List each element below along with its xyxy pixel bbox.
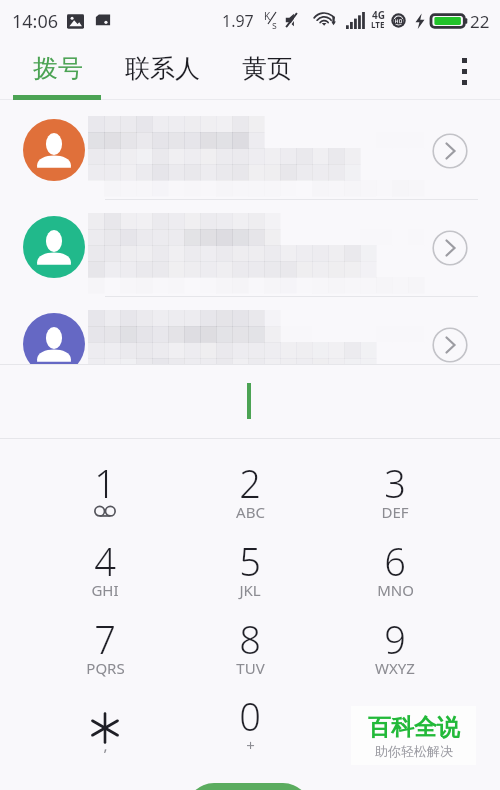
button[interactable]: 1 bbox=[45, 457, 165, 535]
button[interactable]: Details bbox=[432, 133, 468, 169]
button[interactable]: Details bbox=[0, 118, 500, 210]
staticText: 5 bbox=[239, 535, 261, 581]
button[interactable]: 2 bbox=[190, 457, 310, 535]
button[interactable]: Details bbox=[432, 230, 468, 266]
staticText: 0 bbox=[239, 690, 261, 736]
staticText: 助你轻松解决 bbox=[375, 743, 453, 759]
staticText: 4 bbox=[94, 535, 116, 581]
staticText: s bbox=[272, 18, 277, 32]
staticText: MNO bbox=[377, 580, 414, 600]
staticText: K bbox=[264, 9, 271, 23]
staticText: 7 bbox=[94, 613, 116, 659]
staticText: 1.97 bbox=[222, 10, 254, 32]
button[interactable]: 9 bbox=[335, 613, 455, 691]
staticText: 8 bbox=[239, 613, 261, 659]
staticText: JKL bbox=[239, 580, 261, 600]
button[interactable]: 3 bbox=[335, 457, 455, 535]
staticText: 6 bbox=[384, 535, 406, 581]
staticText: PQRS bbox=[86, 658, 125, 678]
button[interactable]: 黄页 bbox=[217, 40, 317, 96]
staticText: 2 bbox=[239, 457, 261, 503]
staticText: GHI bbox=[91, 580, 119, 600]
staticText: 联系人 bbox=[125, 53, 200, 84]
staticText: DEF bbox=[381, 502, 409, 522]
staticText: , bbox=[103, 735, 108, 755]
button[interactable]: 联系人 bbox=[112, 40, 212, 96]
button[interactable]: # bbox=[335, 690, 455, 768]
staticText: 拨号 bbox=[33, 53, 83, 84]
button[interactable]: 5 bbox=[190, 535, 310, 613]
staticText: 黄页 bbox=[242, 53, 292, 84]
staticText: ABC bbox=[236, 502, 265, 522]
button[interactable]: Details bbox=[0, 312, 500, 364]
button[interactable]: 6 bbox=[335, 535, 455, 613]
staticText: TUV bbox=[236, 658, 265, 678]
button[interactable]: 0 bbox=[190, 690, 310, 768]
staticText: LTE bbox=[371, 19, 385, 30]
staticText: 3 bbox=[384, 457, 406, 503]
button[interactable]: Details bbox=[0, 215, 500, 307]
button[interactable]: , bbox=[45, 690, 165, 768]
button[interactable]: 拨号 bbox=[8, 40, 108, 96]
staticText: # bbox=[383, 708, 408, 754]
button[interactable]: More options bbox=[435, 42, 493, 100]
staticText: 百科全说 bbox=[368, 713, 460, 742]
staticText: 4G bbox=[372, 8, 385, 22]
staticText: WXYZ bbox=[375, 658, 415, 678]
staticText: + bbox=[246, 735, 255, 755]
staticText: 14:06 bbox=[12, 9, 59, 34]
button[interactable]: Details bbox=[432, 327, 468, 363]
button[interactable]: 8 bbox=[190, 613, 310, 691]
button[interactable]: 7 bbox=[45, 613, 165, 691]
staticText: 9 bbox=[384, 613, 406, 659]
staticText: 1 bbox=[94, 457, 116, 503]
button[interactable]: 4 bbox=[45, 535, 165, 613]
button[interactable]: Call bbox=[186, 783, 311, 790]
staticText: 22 bbox=[470, 10, 490, 33]
